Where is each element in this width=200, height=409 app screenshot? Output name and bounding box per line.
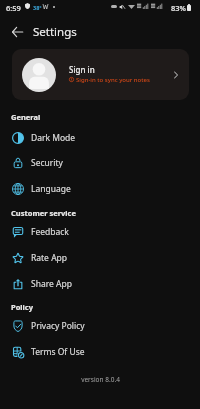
- staticText: Customer service: [11, 208, 76, 218]
- staticText: Settings: [33, 24, 77, 40]
- staticText: 38°: [33, 4, 42, 11]
- staticText: version 8.0.4: [81, 375, 120, 384]
- button[interactable]: Security: [0, 150, 200, 176]
- staticText: Terms Of Use: [31, 346, 85, 358]
- button[interactable]: Terms Of Use: [0, 339, 200, 365]
- button[interactable]: Privacy Policy: [0, 313, 200, 339]
- staticText: Language: [31, 183, 71, 195]
- staticText: Security: [31, 157, 63, 169]
- button[interactable]: Feedback: [0, 219, 200, 245]
- staticText: Feedback: [31, 226, 69, 238]
- staticText: Privacy Policy: [31, 320, 85, 332]
- staticText: Sign-in to sync your notes: [76, 76, 150, 84]
- button[interactable]: Rate App: [0, 245, 200, 271]
- staticText: 6:59: [6, 3, 21, 13]
- button[interactable]: Share App: [0, 271, 200, 297]
- staticText: Dark Mode: [31, 132, 76, 144]
- button[interactable]: Back: [5, 20, 29, 44]
- button[interactable]: Dark Mode: [0, 125, 200, 151]
- staticText: Share App: [31, 278, 72, 290]
- button[interactable]: Sign in: [12, 49, 189, 100]
- staticText: 83%: [171, 3, 186, 13]
- button[interactable]: Language: [0, 176, 200, 202]
- staticText: Rate App: [31, 252, 68, 264]
- staticText: General: [11, 112, 41, 122]
- staticText: Sign in: [69, 64, 95, 75]
- staticText: Policy: [11, 302, 33, 312]
